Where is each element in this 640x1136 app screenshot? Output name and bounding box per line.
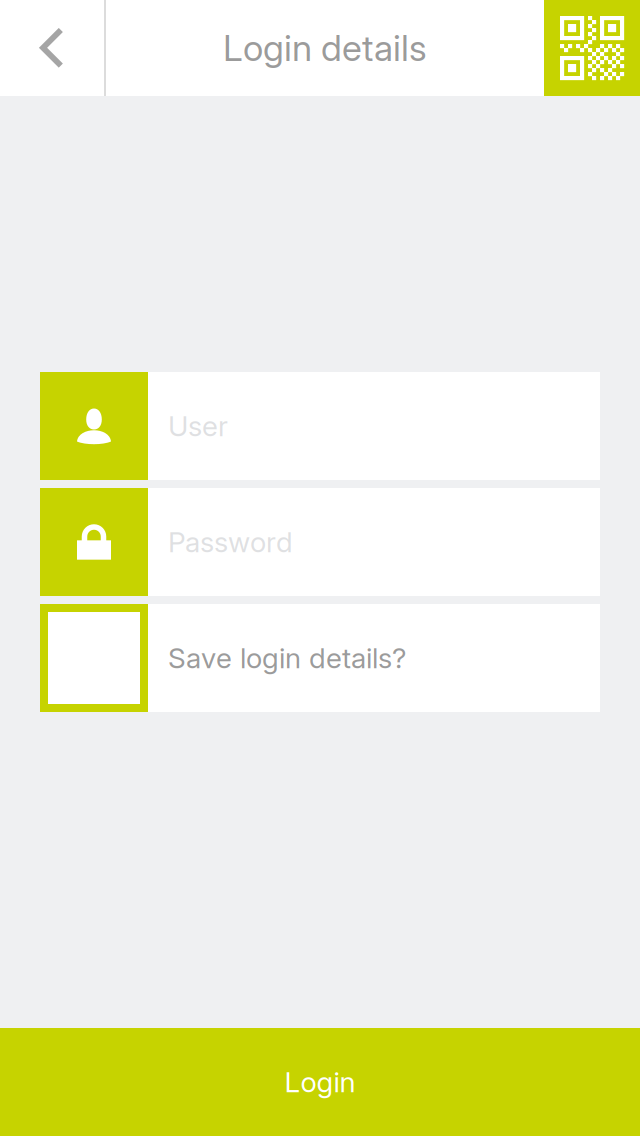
button[interactable]: Save login details? <box>40 604 600 712</box>
button[interactable]: Scan QR code <box>544 0 640 96</box>
button[interactable]: Back <box>0 0 104 96</box>
staticText: Login <box>284 1065 355 1099</box>
staticText: Save login details? <box>168 641 406 675</box>
staticText: Password <box>168 525 293 559</box>
staticText: Login details <box>223 26 427 70</box>
staticText: User <box>168 409 228 443</box>
button[interactable]: Login <box>0 1028 640 1136</box>
